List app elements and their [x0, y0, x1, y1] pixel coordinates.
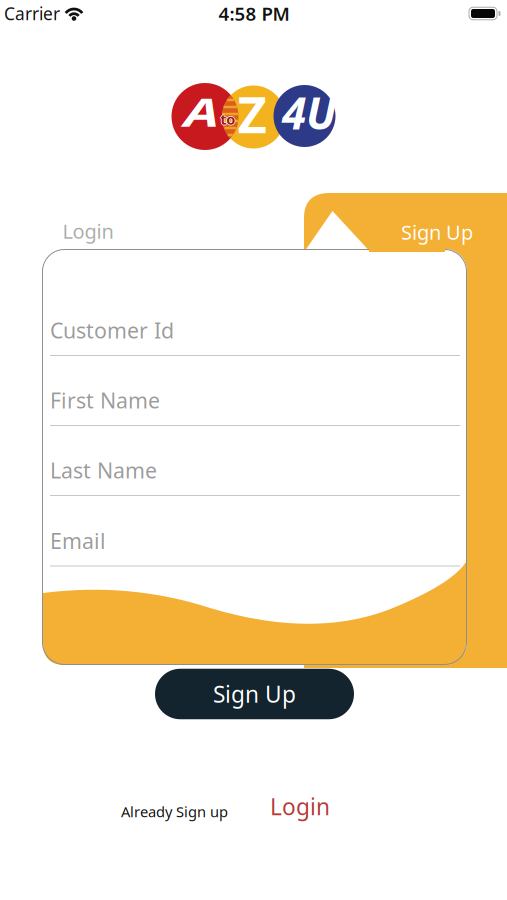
staticText: Already Sign up: [121, 802, 228, 821]
staticText: to: [221, 109, 236, 129]
button[interactable]: Login: [43, 214, 133, 248]
staticText: First Name: [50, 386, 160, 414]
staticText: Sign Up: [213, 679, 296, 709]
button[interactable]: Sign Up: [387, 215, 487, 249]
button[interactable]: Login: [265, 791, 335, 821]
staticText: Carrier: [4, 2, 60, 25]
button[interactable]: First Name: [50, 386, 460, 426]
button[interactable]: Sign Up: [155, 669, 354, 719]
staticText: Last Name: [50, 456, 157, 484]
staticText: Customer Id: [50, 316, 174, 344]
staticText: Sign Up: [401, 219, 473, 245]
staticText: Login: [270, 791, 330, 821]
staticText: to: [220, 109, 235, 128]
staticText: 4U: [282, 83, 336, 142]
staticText: to: [219, 109, 234, 129]
staticText: to: [220, 110, 235, 129]
button[interactable]: Customer Id: [50, 316, 460, 356]
staticText: Login: [62, 218, 113, 244]
staticText: 4:58 PM: [218, 1, 289, 26]
staticText: Z: [237, 80, 266, 147]
button[interactable]: Last Name: [50, 456, 460, 496]
staticText: to: [220, 109, 235, 129]
staticText: A: [189, 85, 214, 138]
staticText: Email: [50, 526, 106, 555]
button[interactable]: Email: [50, 526, 460, 566]
